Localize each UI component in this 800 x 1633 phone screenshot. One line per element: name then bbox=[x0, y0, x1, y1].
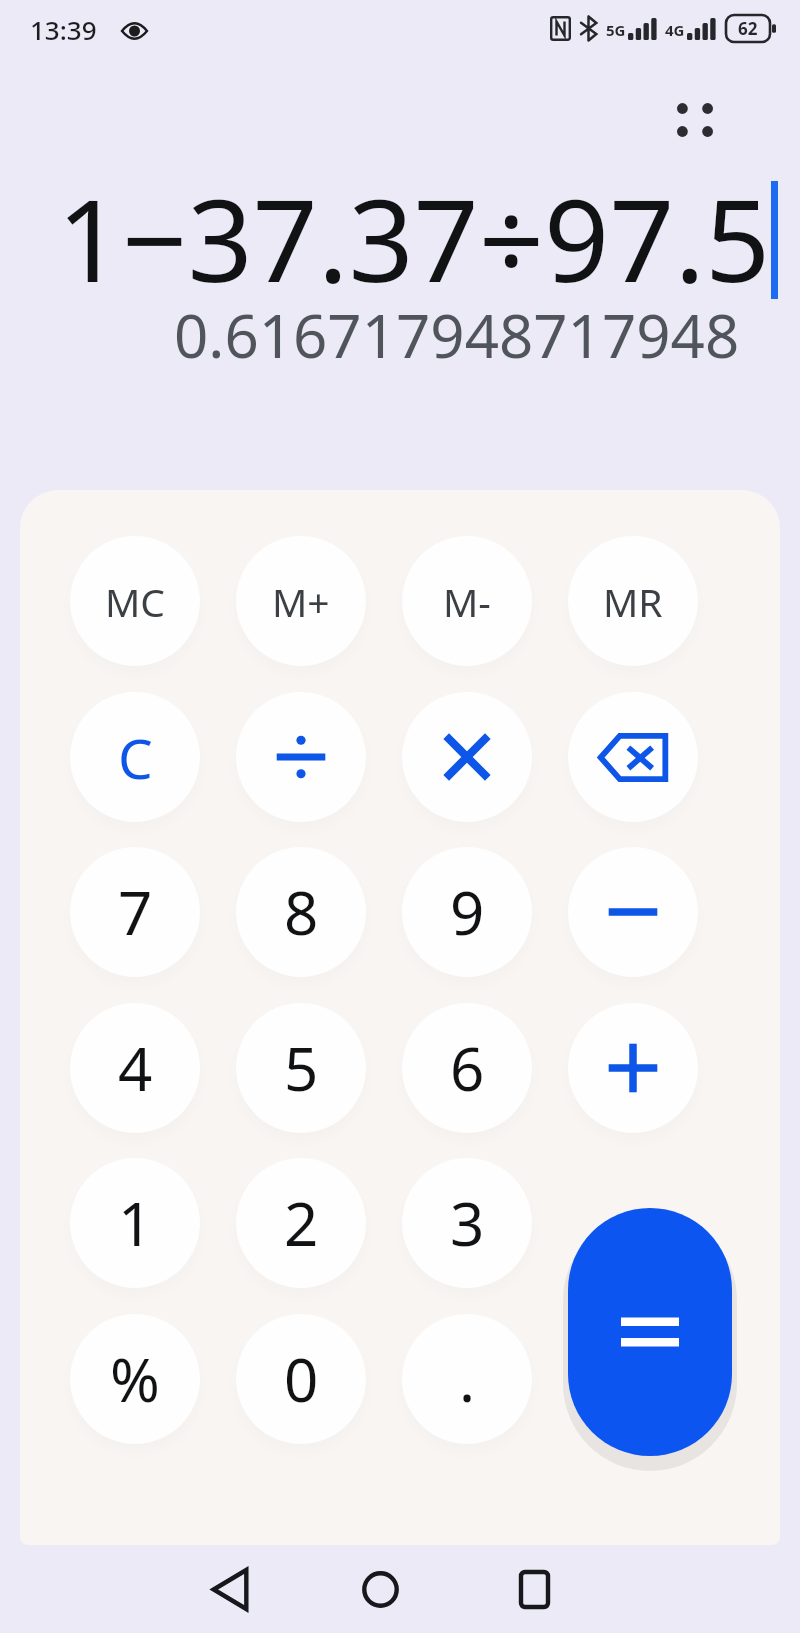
button[interactable]: Back bbox=[178, 1545, 282, 1633]
staticText: 3 bbox=[450, 1182, 485, 1264]
button[interactable]: 8 bbox=[236, 847, 366, 977]
staticText: 0 bbox=[284, 1338, 319, 1420]
staticText: 4 bbox=[118, 1027, 153, 1109]
button[interactable]: MC bbox=[70, 536, 200, 666]
button[interactable]: 5 bbox=[236, 1003, 366, 1133]
button[interactable]: Home bbox=[328, 1545, 432, 1633]
button[interactable]: MR bbox=[568, 536, 698, 666]
button[interactable]: C bbox=[70, 692, 200, 822]
button[interactable]: Multiply bbox=[402, 692, 532, 822]
staticText: 9 bbox=[450, 871, 485, 953]
staticText: . bbox=[459, 1338, 476, 1420]
staticText: MR bbox=[603, 575, 663, 628]
button[interactable]: More options bbox=[654, 84, 736, 156]
staticText: 1−37.37÷97.5 bbox=[57, 160, 771, 315]
staticText: 5 bbox=[284, 1027, 319, 1109]
staticText: 4G bbox=[665, 20, 685, 40]
staticText: M+ bbox=[272, 575, 330, 628]
staticText: MC bbox=[105, 575, 166, 628]
staticText: 5G bbox=[606, 20, 626, 40]
button[interactable]: 0 bbox=[236, 1314, 366, 1444]
button[interactable]: 7 bbox=[70, 847, 200, 977]
staticText: 6 bbox=[450, 1027, 485, 1109]
staticText: M- bbox=[443, 575, 491, 628]
button[interactable]: M+ bbox=[236, 536, 366, 666]
button[interactable]: Plus bbox=[568, 1003, 698, 1133]
button[interactable]: 3 bbox=[402, 1158, 532, 1288]
button[interactable]: Recent apps bbox=[482, 1545, 586, 1633]
staticText: 2 bbox=[284, 1182, 319, 1264]
button[interactable]: Backspace bbox=[568, 692, 698, 822]
button[interactable]: 6 bbox=[402, 1003, 532, 1133]
button[interactable]: . bbox=[402, 1314, 532, 1444]
staticText: 13:39 bbox=[30, 12, 97, 47]
staticText: 0.616717948717948 bbox=[174, 294, 740, 376]
button[interactable]: 4 bbox=[70, 1003, 200, 1133]
staticText: C bbox=[118, 720, 153, 795]
staticText: 8 bbox=[284, 871, 319, 953]
staticText: 7 bbox=[118, 871, 153, 953]
button[interactable]: Minus bbox=[568, 847, 698, 977]
button[interactable]: M- bbox=[402, 536, 532, 666]
button[interactable]: 2 bbox=[236, 1158, 366, 1288]
button[interactable]: Equals bbox=[568, 1208, 732, 1456]
staticText: 62 bbox=[738, 17, 758, 40]
button[interactable]: % bbox=[70, 1314, 200, 1444]
staticText: 1 bbox=[118, 1182, 153, 1264]
button[interactable]: 9 bbox=[402, 847, 532, 977]
staticText: % bbox=[110, 1338, 160, 1420]
button[interactable]: Divide bbox=[236, 692, 366, 822]
button[interactable]: 1 bbox=[70, 1158, 200, 1288]
